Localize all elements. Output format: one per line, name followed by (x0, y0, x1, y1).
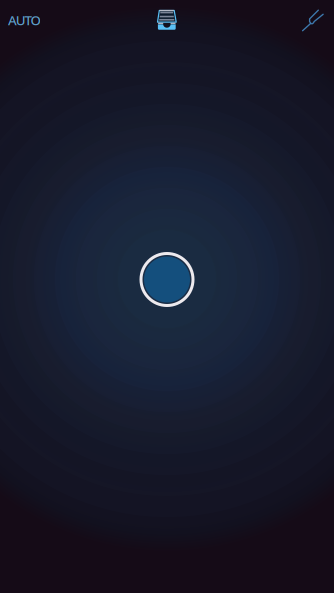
button[interactable]: Tuning fork (296, 3, 329, 36)
button[interactable]: Library (151, 3, 183, 37)
button[interactable]: AUTO (5, 3, 43, 37)
staticText: AUTO (8, 11, 40, 29)
